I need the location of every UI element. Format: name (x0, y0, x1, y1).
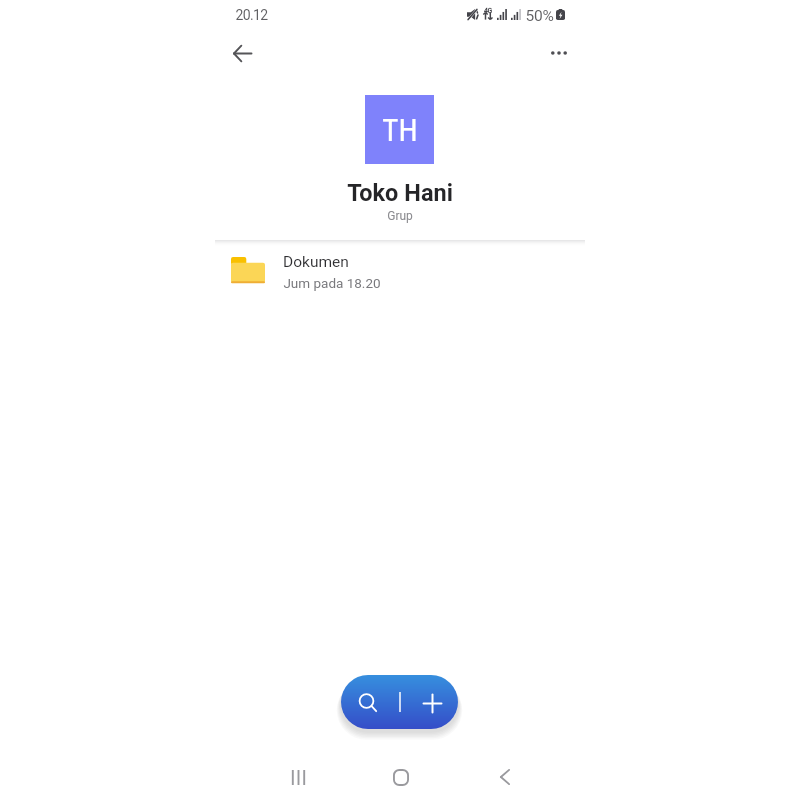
staticText: 4G (484, 6, 492, 15)
button[interactable]: Dokumen (215, 241, 585, 297)
button[interactable]: More options (539, 33, 579, 73)
staticText: 20.12 (235, 7, 268, 23)
button[interactable]: Back (222, 33, 262, 73)
staticText: Grup (387, 209, 413, 223)
staticText: 50% (525, 7, 554, 25)
button[interactable]: Home (377, 753, 425, 800)
button[interactable]: Recents (274, 753, 322, 800)
button[interactable]: Search (341, 675, 399, 729)
button[interactable]: Add (399, 675, 458, 729)
staticText: Jum pada 18.20 (283, 275, 381, 291)
staticText: TH (382, 112, 418, 148)
staticText: Dokumen (283, 253, 349, 271)
button[interactable]: Back (481, 753, 529, 800)
staticText: Toko Hani (347, 179, 453, 207)
